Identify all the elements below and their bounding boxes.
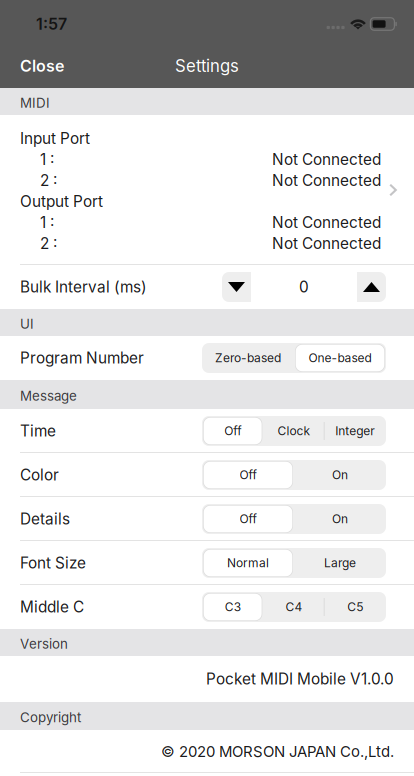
staticText: Not Connected xyxy=(272,171,381,190)
staticText: Version xyxy=(20,636,68,652)
staticText: Color xyxy=(20,466,59,484)
button[interactable]: C5 xyxy=(325,592,386,622)
staticText: Details xyxy=(20,510,70,528)
staticText: Not Connected xyxy=(272,150,381,169)
staticText: Program Number xyxy=(20,349,144,367)
staticText: On xyxy=(332,512,348,526)
button[interactable]: On xyxy=(294,504,386,534)
staticText: Clock xyxy=(277,424,310,438)
staticText: Input Port xyxy=(20,129,90,148)
staticText: MIDI xyxy=(20,95,50,111)
staticText: Large xyxy=(324,556,356,570)
staticText: © 2020 MORSON JAPAN Co.,Ltd. xyxy=(161,742,394,761)
staticText: 2 : xyxy=(40,171,57,190)
staticText: C4 xyxy=(285,600,302,614)
button[interactable]: Increase xyxy=(357,272,386,302)
staticText: Pocket MIDI Mobile V1.0.0 xyxy=(206,670,394,688)
staticText: Copyright xyxy=(20,709,81,725)
staticText: Not Connected xyxy=(272,234,381,253)
button[interactable]: Off xyxy=(202,416,263,446)
staticText: Normal xyxy=(227,556,269,570)
staticText: Not Connected xyxy=(272,213,381,232)
staticText: Settings xyxy=(175,56,239,76)
staticText: Integer xyxy=(335,424,375,438)
staticText: C5 xyxy=(347,600,363,614)
staticText: C3 xyxy=(225,600,241,614)
staticText: Off xyxy=(239,512,256,526)
staticText: 1 : xyxy=(40,213,54,232)
staticText: 2 : xyxy=(40,234,57,253)
button[interactable]: Decrease xyxy=(222,272,251,302)
button[interactable]: Off xyxy=(202,460,294,490)
button[interactable]: Integer xyxy=(325,416,386,446)
staticText: Output Port xyxy=(20,192,103,211)
button[interactable]: Off xyxy=(202,504,294,534)
button[interactable]: Large xyxy=(294,548,386,578)
staticText: Message xyxy=(20,388,77,404)
staticText: Zero-based xyxy=(215,351,281,365)
button[interactable]: Zero-based xyxy=(202,343,294,373)
staticText: Off xyxy=(224,424,241,438)
button[interactable]: Clock xyxy=(263,416,325,446)
staticText: Close xyxy=(20,56,64,76)
staticText: UI xyxy=(20,316,34,332)
button[interactable]: Input Port xyxy=(0,115,414,265)
staticText: Middle C xyxy=(20,598,84,616)
staticText: Font Size xyxy=(20,554,86,572)
button[interactable]: On xyxy=(294,460,386,490)
button[interactable]: One-based xyxy=(294,343,386,373)
button[interactable]: Close xyxy=(0,44,78,88)
staticText: Bulk Interval (ms) xyxy=(20,278,147,296)
button[interactable]: Normal xyxy=(202,548,294,578)
staticText: One-based xyxy=(308,351,371,365)
staticText: Off xyxy=(239,468,256,482)
staticText: Time xyxy=(20,422,56,440)
staticText: 1:57 xyxy=(36,14,67,34)
button[interactable]: C4 xyxy=(263,592,325,622)
button[interactable]: C3 xyxy=(202,592,263,622)
staticText: 0 xyxy=(299,278,309,296)
staticText: On xyxy=(332,468,348,482)
staticText: 1 : xyxy=(40,150,54,169)
